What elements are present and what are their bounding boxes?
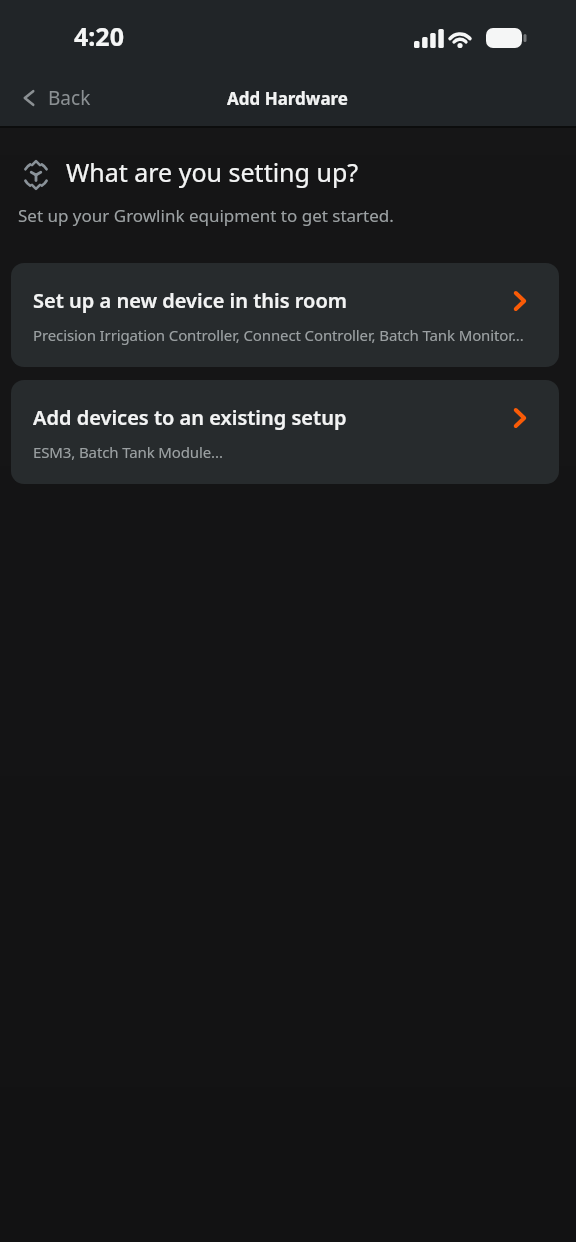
staticText: Precision Irrigation Controller, Connect… — [33, 325, 524, 345]
staticText: Back — [48, 85, 91, 111]
staticText: 4:20 — [74, 19, 124, 53]
staticText: Add devices to an existing setup — [33, 404, 514, 431]
button[interactable]: Add devices to an existing setup — [11, 380, 559, 484]
staticText: What are you setting up? — [66, 155, 359, 189]
button[interactable]: Back — [22, 85, 91, 111]
staticText: Add Hardware — [227, 87, 349, 110]
staticText: ESM3, Batch Tank Module... — [33, 442, 223, 462]
staticText: Set up your Growlink equipment to get st… — [18, 204, 394, 227]
staticText: Set up a new device in this room — [33, 287, 514, 314]
button[interactable]: Set up a new device in this room — [11, 263, 559, 367]
